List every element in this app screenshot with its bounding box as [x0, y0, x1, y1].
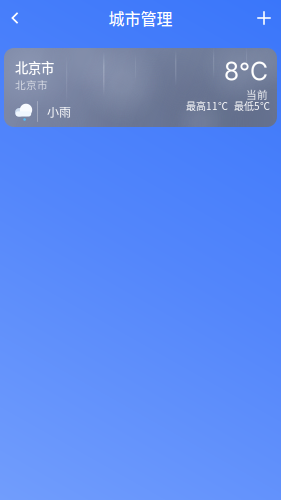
staticText: 最低5℃: [234, 98, 270, 113]
button[interactable]: 北京市: [4, 48, 277, 127]
button[interactable]: 添加城市: [249, 2, 279, 34]
staticText: 城市管理: [108, 6, 172, 30]
button[interactable]: 返回: [2, 2, 28, 34]
staticText: 最高11℃: [186, 98, 228, 113]
staticText: 小雨: [47, 103, 71, 120]
staticText: 当前: [246, 86, 268, 102]
staticText: 北京市: [15, 77, 48, 92]
staticText: 8°C: [224, 56, 268, 86]
staticText: 北京市: [15, 57, 54, 77]
